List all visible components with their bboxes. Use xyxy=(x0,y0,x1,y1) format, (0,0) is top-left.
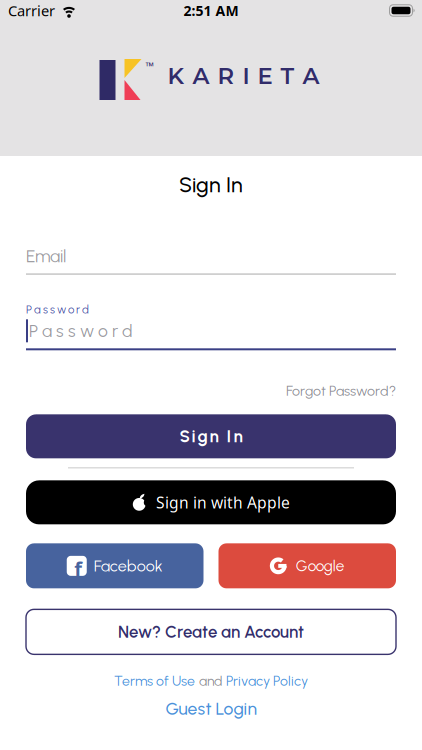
button[interactable]: Guest Login xyxy=(165,698,256,719)
staticText: Sign in with Apple xyxy=(156,492,290,513)
staticText: Carrier xyxy=(8,1,55,20)
staticText: P a s s w o r d xyxy=(29,320,133,341)
button[interactable]: Terms of Use xyxy=(114,672,195,689)
staticText: ™ xyxy=(145,59,153,73)
staticText: Google xyxy=(296,557,345,575)
button[interactable]: P a s s w o r d xyxy=(0,303,422,350)
staticText: Sign In xyxy=(179,172,243,198)
staticText: Privacy Policy xyxy=(226,672,308,689)
button[interactable]: Sign in with Apple xyxy=(0,480,422,524)
staticText: Forgot Password? xyxy=(286,382,396,399)
staticText: S i g n I n xyxy=(179,426,242,446)
staticText: and xyxy=(199,672,222,689)
button[interactable]: New? Create an Account xyxy=(0,609,422,654)
button[interactable]: f xyxy=(26,543,203,588)
staticText: Facebook xyxy=(94,556,163,576)
staticText: Guest Login xyxy=(165,698,256,719)
staticText: K A R I E T A xyxy=(167,62,319,90)
button[interactable]: Privacy Policy xyxy=(226,672,308,689)
staticText: Terms of Use xyxy=(114,672,195,689)
button[interactable]: Email xyxy=(0,246,422,275)
staticText: New? Create an Account xyxy=(118,622,304,642)
staticText: 2:51 AM xyxy=(183,1,238,20)
staticText: P a s s w o r d xyxy=(26,303,89,316)
staticText: Email xyxy=(26,246,66,267)
staticText: f xyxy=(74,556,82,582)
button[interactable]: Google xyxy=(218,543,396,588)
button[interactable]: Forgot Password? xyxy=(286,382,396,399)
button[interactable]: S i g n I n xyxy=(0,414,422,458)
